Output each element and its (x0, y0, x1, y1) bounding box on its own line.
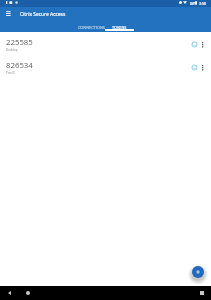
staticText: 225585 (6, 37, 33, 48)
staticText: 88% (190, 1, 198, 6)
staticText: 3:58 (199, 1, 207, 6)
button[interactable]: Back (4, 288, 14, 298)
button[interactable]: More options (198, 63, 207, 72)
staticText: 23 (193, 43, 196, 46)
staticText: CONNECTIONS (78, 25, 105, 30)
button[interactable]: Add token (192, 266, 204, 278)
staticText: 23 (193, 66, 196, 69)
staticText: Citrix Secure Access (20, 11, 66, 18)
button[interactable]: Open navigation drawer (2, 7, 14, 19)
staticText: TOKENS (112, 25, 127, 30)
button[interactable]: More options (198, 40, 207, 49)
button[interactable]: 826534 (0, 55, 211, 78)
button[interactable]: Recent apps (197, 288, 207, 298)
button[interactable]: Home (23, 288, 33, 298)
staticText: Desktop (6, 48, 18, 52)
staticText: Pixel C (6, 71, 16, 75)
button[interactable]: 225585 (0, 32, 211, 55)
staticText: 826534 (6, 60, 33, 71)
button[interactable]: TOKENS (105, 22, 134, 33)
button[interactable]: CONNECTIONS (77, 22, 106, 33)
